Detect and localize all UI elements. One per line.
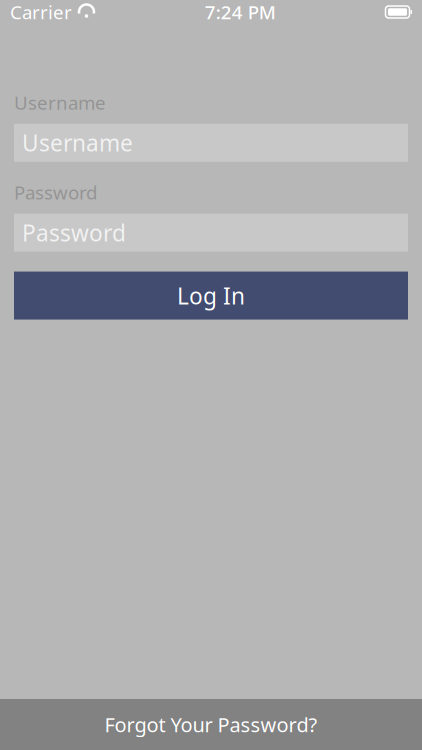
button[interactable]: Username <box>14 124 408 162</box>
staticText: Username <box>14 90 106 115</box>
staticText: Forgot Your Password? <box>104 711 317 738</box>
staticText: 7:24 PM <box>205 0 276 24</box>
staticText: Username <box>22 128 133 158</box>
staticText: Carrier <box>10 0 72 24</box>
staticText: Password <box>22 217 126 248</box>
staticText: Password <box>14 180 97 205</box>
button[interactable]: Log In <box>14 272 408 320</box>
button[interactable]: Forgot Your Password? <box>0 699 422 750</box>
staticText: Log In <box>177 280 245 311</box>
button[interactable]: Password <box>14 214 408 252</box>
